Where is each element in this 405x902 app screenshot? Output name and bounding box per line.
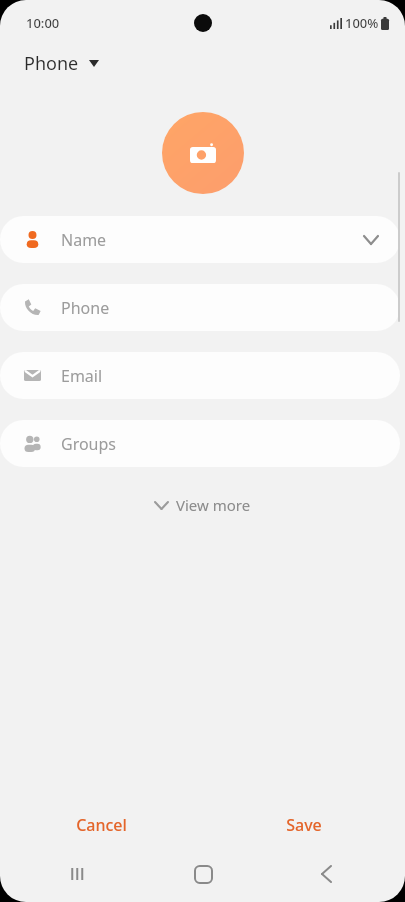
button[interactable]: Email bbox=[0, 352, 400, 399]
staticText: Email bbox=[61, 365, 103, 387]
staticText: Phone bbox=[61, 297, 110, 319]
staticText: Name bbox=[61, 229, 107, 251]
staticText: 100% bbox=[345, 14, 379, 32]
staticText: Cancel bbox=[76, 814, 127, 836]
button[interactable]: Add photo bbox=[162, 112, 244, 194]
button[interactable]: Phone bbox=[0, 284, 400, 331]
staticText: View more bbox=[176, 495, 251, 515]
button[interactable]: View more bbox=[141, 489, 265, 521]
staticText: Groups bbox=[61, 433, 117, 455]
staticText: 10:00 bbox=[26, 14, 60, 32]
button[interactable]: Groups bbox=[0, 420, 400, 467]
button[interactable]: Cancel bbox=[0, 806, 202, 844]
button[interactable]: Back bbox=[281, 852, 371, 896]
button[interactable]: Recent apps bbox=[34, 852, 124, 896]
button[interactable]: Name bbox=[0, 216, 400, 263]
button[interactable]: Phone bbox=[0, 46, 115, 80]
button[interactable]: Home bbox=[158, 852, 248, 896]
staticText: Save bbox=[286, 814, 322, 836]
staticText: Phone bbox=[24, 51, 79, 76]
button[interactable]: Save bbox=[202, 806, 405, 844]
